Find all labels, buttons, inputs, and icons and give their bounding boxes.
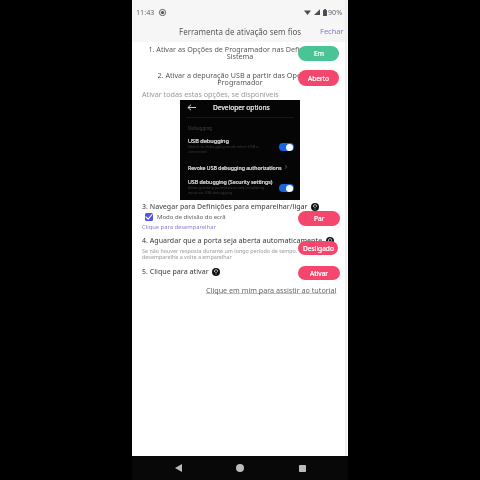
staticText: Modo de divisão do ecrã [157, 213, 226, 221]
staticText: Desligado [303, 244, 334, 253]
staticText: Clique para desemparelhar [142, 223, 216, 231]
button[interactable]: Fechar [315, 24, 349, 38]
staticText: Debugging [188, 125, 213, 131]
button[interactable]: Desligado [298, 241, 338, 255]
button[interactable]: Recents [292, 458, 312, 478]
staticText: 11:43 [136, 7, 155, 17]
staticText: Developer options [213, 103, 270, 112]
button[interactable]: Ajuda [326, 237, 334, 245]
staticText: Switch to debugging mode when USB is con… [188, 144, 259, 154]
staticText: Se não houver resposta durante um longo … [142, 247, 298, 261]
button[interactable]: Em [298, 46, 339, 61]
staticText: Clique em mim para assistir ao tutorial [206, 285, 337, 295]
button[interactable]: Back [187, 103, 196, 112]
staticText: Ativar todas estas opções, se disponívei… [142, 89, 279, 99]
button[interactable]: Home [230, 458, 250, 478]
staticText: Par [314, 214, 325, 223]
button[interactable]: Toggle [279, 143, 294, 151]
staticText: Allow granting permissions and simulatin… [188, 185, 265, 195]
staticText: USB debugging [188, 137, 229, 145]
button[interactable]: Par [298, 211, 340, 226]
staticText: Aberto [308, 74, 330, 83]
staticText: 3. Navegar para Definições para emparelh… [142, 202, 308, 212]
staticText: Ativar [310, 269, 329, 278]
button[interactable]: Back [168, 458, 188, 478]
staticText: Em [314, 49, 324, 58]
button[interactable]: Clique em mim para assistir ao tutorial [206, 285, 337, 295]
button[interactable]: Toggle [279, 184, 294, 192]
staticText: Revoke USB debugging authorizations [188, 164, 282, 171]
staticText: 4. Aguardar que a porta seja aberta auto… [142, 236, 323, 246]
button[interactable]: Ajuda [311, 203, 319, 211]
staticText: 5. Clique para ativar [142, 267, 209, 277]
staticText: Ferramenta de ativação sem fios [179, 26, 302, 37]
staticText: Fechar [320, 26, 344, 36]
button[interactable]: Modo de divisão do ecrã [145, 213, 226, 221]
button[interactable]: Clique para desemparelhar [142, 223, 216, 231]
button[interactable]: Ativar [298, 266, 340, 280]
button[interactable]: Ajuda [212, 268, 220, 276]
staticText: 2. Ativar a depuração USB a partir das O… [132, 70, 348, 88]
staticText: 90% [328, 7, 343, 17]
staticText: USB debugging (Security settings) [188, 178, 273, 185]
button[interactable]: Aberto [298, 70, 339, 86]
staticText: 1. Ativar as Opções de Programador nas D… [132, 44, 348, 62]
